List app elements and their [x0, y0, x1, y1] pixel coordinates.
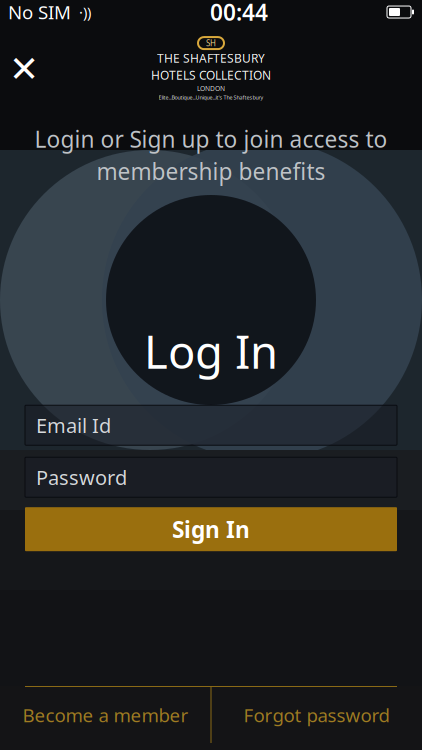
staticText: Email Id	[36, 412, 111, 438]
staticText: Password	[36, 464, 127, 490]
staticText: Forgot password	[243, 703, 389, 727]
staticText: Sign In	[172, 514, 250, 544]
button[interactable]: Close	[0, 45, 48, 93]
staticText: Become a member	[22, 703, 188, 727]
staticText: membership benefits	[96, 156, 325, 186]
staticText: ✕	[9, 49, 39, 89]
staticText: HOTELS COLLECTION	[151, 67, 271, 83]
staticText: Elite...Boutique...Unique...it's The Sha…	[158, 94, 263, 101]
staticText: Log In	[144, 321, 278, 381]
staticText: THE SHAFTESBURY	[157, 50, 265, 66]
staticText: SH	[206, 38, 216, 48]
staticText: ·))	[71, 2, 91, 22]
button[interactable]: Become a member	[0, 687, 211, 743]
staticText: 00:44	[210, 0, 268, 27]
button[interactable]: Forgot password	[211, 687, 422, 743]
staticText: Login or Sign up to join access to	[34, 124, 387, 154]
staticText: LONDON	[197, 84, 225, 93]
button[interactable]: Sign In	[25, 507, 397, 551]
staticText: No SIM	[8, 0, 71, 24]
